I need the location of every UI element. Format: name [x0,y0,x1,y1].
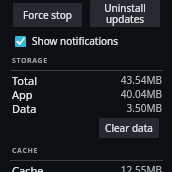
staticText: CACHE [12,146,38,156]
staticText: Total [12,73,37,87]
button[interactable]: Cache [0,163,172,172]
staticText: Data [12,101,37,115]
button[interactable]: Total [0,73,172,87]
staticText: Uninstall updates [104,1,146,26]
staticText: Show notifications [32,34,119,48]
button[interactable]: Show notifications checkbox [0,33,172,49]
staticText: 43.54MB [120,73,162,87]
staticText: 12.55MB [120,163,162,172]
staticText: Force stop [23,8,72,22]
button[interactable]: Uninstall updates [90,0,160,27]
staticText: App [12,87,33,101]
staticText: 3.50MB [126,101,162,115]
staticText: 40.04MB [120,87,162,101]
staticText: Clear data [105,121,153,135]
other: Show notifications checkbox [15,36,26,47]
button[interactable]: Clear data [99,118,159,138]
staticText: STORAGE [12,56,48,66]
staticText: Cache [12,163,44,172]
button[interactable]: App [0,87,172,101]
button[interactable]: Force stop [13,3,82,27]
button[interactable]: Data [0,101,172,115]
